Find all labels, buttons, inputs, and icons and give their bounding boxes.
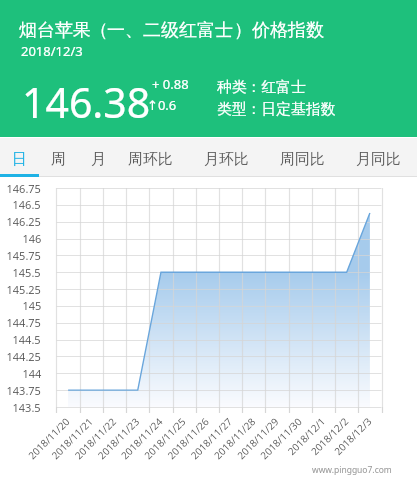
staticText: ） (234, 19, 252, 42)
button[interactable]: 月 (78, 138, 118, 177)
staticText: 周同比 (280, 150, 325, 169)
button[interactable]: 周 (38, 138, 78, 177)
button[interactable]: 周同比 (270, 138, 334, 177)
staticText: + 0.88 (152, 75, 189, 93)
button[interactable]: 月同比 (336, 138, 417, 177)
button[interactable]: 周环比 (118, 138, 182, 177)
staticText: 2018/12/3 (21, 42, 83, 60)
staticText: 类型：日定基指数 (217, 100, 336, 119)
staticText: 146.38 (22, 74, 151, 130)
button[interactable]: 月环比 (182, 138, 270, 177)
staticText: 周环比 (128, 150, 173, 169)
staticText: 烟台苹果 (19, 19, 91, 42)
staticText: 月环比 (204, 150, 249, 169)
staticText: 月同比 (356, 150, 401, 169)
staticText: 月 (91, 150, 106, 169)
button[interactable]: 日 (0, 138, 38, 177)
staticText: 周 (51, 150, 66, 169)
staticText: ↑0.6 (147, 96, 177, 114)
staticText: 价格指数 (252, 19, 324, 42)
staticText: 种类：红富士 (217, 78, 306, 97)
staticText: （ (90, 19, 108, 42)
staticText: 日 (12, 150, 27, 169)
staticText: 一、二级红富士 (107, 19, 233, 42)
